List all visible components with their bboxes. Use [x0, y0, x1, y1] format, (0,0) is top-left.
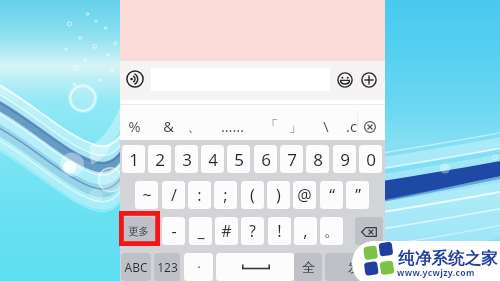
staticText: _ — [197, 220, 205, 242]
button[interactable]: Add attachment — [361, 72, 377, 88]
staticText: 纯净系统之家 — [398, 248, 498, 269]
staticText: 5 — [234, 148, 244, 171]
button[interactable]: 2 — [148, 145, 171, 173]
button[interactable]: \ — [313, 109, 339, 143]
button[interactable]: 5 — [227, 145, 250, 173]
staticText: , — [303, 220, 308, 242]
staticText: 0 — [366, 148, 376, 171]
button[interactable]: 「 — [258, 109, 284, 143]
button[interactable]: 9 — [333, 145, 356, 173]
staticText: % — [128, 116, 141, 136]
button[interactable]: , — [294, 217, 317, 245]
staticText: 3 — [182, 148, 192, 171]
staticText: ! — [277, 220, 282, 242]
staticText: “ — [329, 184, 335, 206]
button[interactable]: - — [162, 217, 185, 245]
button[interactable]: 发 — [325, 253, 383, 281]
button[interactable]: · — [184, 253, 213, 281]
staticText: ) — [276, 184, 281, 206]
staticText: 6 — [261, 148, 271, 171]
staticText: 全 — [302, 259, 315, 275]
button[interactable]: ” — [346, 181, 369, 209]
staticText: 123 — [157, 259, 178, 275]
button[interactable]: & — [155, 109, 181, 143]
button[interactable]: ? — [241, 217, 264, 245]
staticText: # — [221, 220, 232, 242]
staticText: 」 — [288, 117, 303, 135]
staticText: www.ycwjzy.com — [397, 267, 475, 279]
staticText: 更多 — [128, 225, 149, 238]
button[interactable]: …… — [219, 109, 245, 143]
staticText: ? — [249, 220, 256, 242]
button[interactable]: 更多 — [122, 217, 155, 245]
staticText: ” — [355, 184, 361, 206]
button[interactable]: 1 — [122, 145, 145, 173]
button[interactable]: _ — [189, 217, 212, 245]
button[interactable]: % — [121, 109, 147, 143]
button[interactable]: “ — [320, 181, 343, 209]
button[interactable] — [216, 253, 294, 281]
staticText: & — [163, 116, 174, 136]
staticText: 7 — [287, 148, 297, 171]
button[interactable]: Emoji — [337, 72, 353, 88]
staticText: 4 — [208, 148, 218, 171]
staticText: ; — [223, 184, 228, 206]
button[interactable]: : — [188, 181, 211, 209]
button[interactable]: ( — [241, 181, 264, 209]
button[interactable]: Clear input — [362, 119, 378, 135]
button[interactable]: 123 — [154, 253, 180, 281]
button[interactable]: 7 — [280, 145, 303, 173]
button[interactable]: 」 — [282, 109, 308, 143]
staticText: 、 — [187, 117, 202, 135]
button[interactable]: Voice input — [126, 70, 144, 88]
button[interactable]: 4 — [201, 145, 224, 173]
staticText: 发 — [348, 259, 361, 275]
staticText: / — [171, 184, 177, 206]
button[interactable]: ) — [267, 181, 290, 209]
button[interactable]: ABC — [121, 253, 151, 281]
staticText: 。 — [324, 221, 340, 241]
staticText: \ — [323, 116, 329, 136]
staticText: · — [197, 258, 201, 276]
staticText: ~ — [142, 184, 152, 206]
staticText: 1 — [129, 148, 139, 171]
staticText: ( — [250, 184, 255, 206]
button[interactable]: 0 — [359, 145, 382, 173]
staticText: 9 — [340, 148, 350, 171]
staticText: 「 — [264, 117, 279, 135]
button[interactable]: 、 — [181, 109, 207, 143]
staticText: .c — [346, 116, 357, 136]
button[interactable] — [355, 217, 383, 245]
button[interactable]: # — [215, 217, 238, 245]
button[interactable]: 6 — [254, 145, 277, 173]
button[interactable]: @ — [293, 181, 316, 209]
staticText: ABC — [124, 259, 148, 275]
button[interactable]: ; — [214, 181, 237, 209]
staticText: @ — [297, 184, 312, 206]
button[interactable]: .c — [338, 109, 364, 143]
staticText: : — [197, 184, 202, 206]
button[interactable]: ~ — [135, 181, 158, 209]
staticText: - — [171, 220, 177, 242]
button[interactable]: / — [162, 181, 185, 209]
button[interactable]: 。 — [320, 217, 343, 245]
button[interactable]: ! — [268, 217, 291, 245]
staticText: 2 — [155, 148, 165, 171]
button[interactable]: 3 — [175, 145, 198, 173]
button[interactable]: 8 — [306, 145, 329, 173]
button[interactable]: 全 — [294, 253, 322, 281]
staticText: 8 — [313, 148, 323, 171]
staticText: …… — [221, 116, 244, 136]
